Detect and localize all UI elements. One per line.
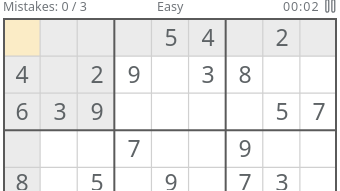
button[interactable]: Pause game	[325, 0, 337, 14]
button[interactable]	[41, 19, 78, 56]
button[interactable]	[189, 130, 226, 167]
button[interactable]	[300, 56, 337, 93]
button[interactable]: 2	[78, 56, 115, 93]
button[interactable]: 6	[3, 93, 41, 130]
button[interactable]: 8	[226, 56, 263, 93]
staticText: 4	[15, 58, 29, 89]
staticText: 4	[201, 21, 215, 52]
button[interactable]	[300, 19, 337, 56]
button[interactable]: 3	[263, 167, 300, 191]
staticText: 5	[275, 95, 289, 126]
staticText: 00:02	[283, 0, 320, 15]
button[interactable]	[115, 167, 152, 191]
staticText: 3	[53, 95, 67, 126]
button[interactable]: 4	[189, 19, 226, 56]
staticText: 9	[90, 95, 104, 126]
staticText: Mistakes: 0 / 3	[3, 0, 87, 15]
button[interactable]: 5	[78, 167, 115, 191]
staticText: 7	[312, 95, 326, 126]
staticText: 2	[90, 58, 104, 89]
button[interactable]: 3	[41, 93, 78, 130]
staticText: 3	[201, 58, 215, 89]
staticText: 5	[164, 21, 178, 52]
staticText: 8	[238, 58, 252, 89]
button[interactable]	[3, 130, 41, 167]
staticText: Easy	[157, 0, 184, 15]
staticText: 7	[127, 132, 141, 163]
button[interactable]	[263, 56, 300, 93]
staticText: 6	[15, 95, 29, 126]
button[interactable]: 2	[263, 19, 300, 56]
button[interactable]	[152, 93, 189, 130]
staticText: 9	[127, 58, 141, 89]
button[interactable]: 7	[226, 167, 263, 191]
staticText: 7	[238, 166, 252, 190]
button[interactable]	[41, 167, 78, 191]
button[interactable]: 9	[115, 56, 152, 93]
button[interactable]: 8	[3, 167, 41, 191]
staticText: 5	[90, 166, 104, 190]
button[interactable]	[152, 130, 189, 167]
button[interactable]	[263, 130, 300, 167]
button[interactable]	[226, 19, 263, 56]
staticText: 2	[275, 21, 289, 52]
button[interactable]: 4	[3, 56, 41, 93]
button[interactable]	[78, 130, 115, 167]
button[interactable]: 3	[189, 56, 226, 93]
button[interactable]	[41, 130, 78, 167]
staticText: 8	[15, 166, 29, 190]
staticText: 9	[238, 132, 252, 163]
button[interactable]	[300, 130, 337, 167]
button[interactable]: 9	[78, 93, 115, 130]
button[interactable]	[189, 93, 226, 130]
button[interactable]: 7	[300, 93, 337, 130]
button[interactable]	[78, 19, 115, 56]
staticText: 3	[275, 166, 289, 190]
button[interactable]: 7	[115, 130, 152, 167]
button[interactable]	[115, 19, 152, 56]
button[interactable]	[115, 93, 152, 130]
button[interactable]	[41, 56, 78, 93]
button[interactable]	[300, 167, 337, 191]
staticText: 9	[164, 166, 178, 190]
button[interactable]	[226, 93, 263, 130]
button[interactable]	[3, 19, 41, 56]
button[interactable]: 9	[152, 167, 189, 191]
button[interactable]: 5	[263, 93, 300, 130]
button[interactable]: 5	[152, 19, 189, 56]
button[interactable]	[189, 167, 226, 191]
button[interactable]: 9	[226, 130, 263, 167]
button[interactable]	[152, 56, 189, 93]
